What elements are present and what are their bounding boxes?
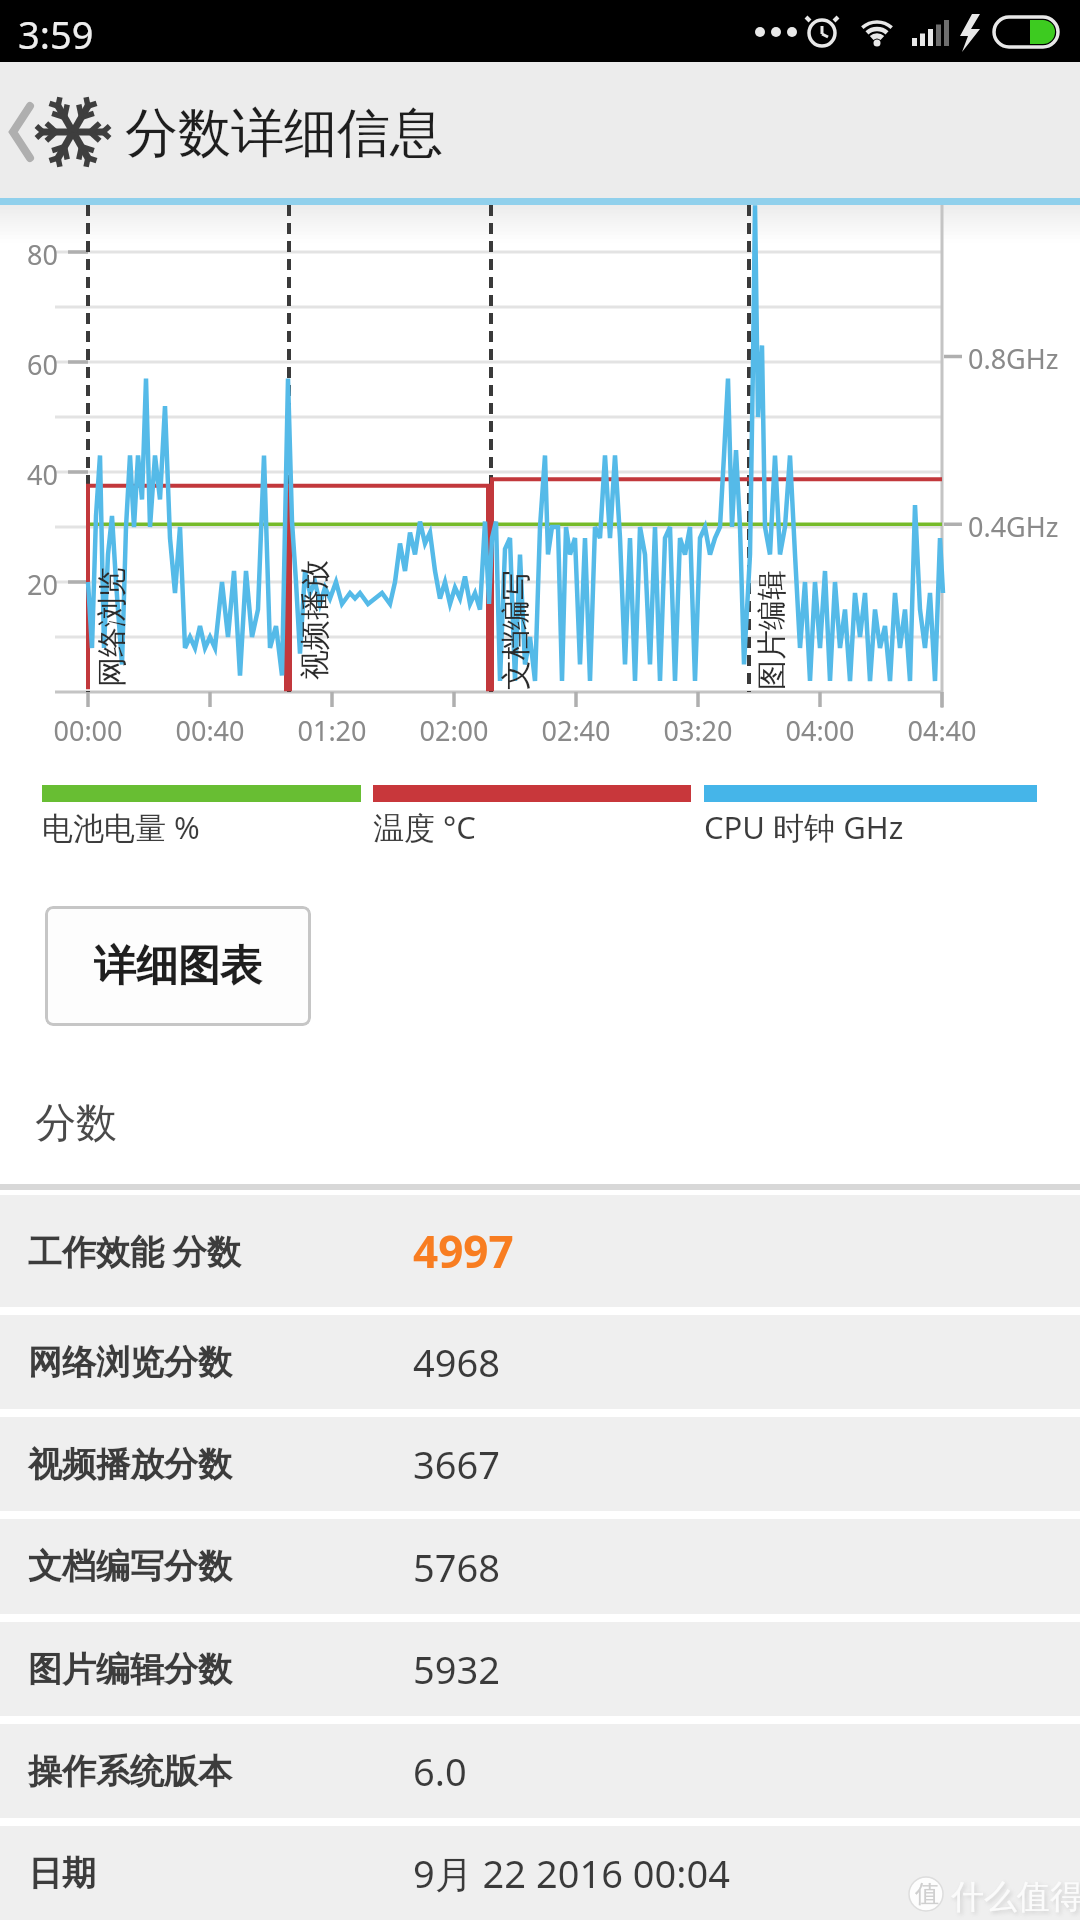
staticText: 5768 [413,1541,500,1593]
staticText: 分数详细信息 [125,100,443,167]
button[interactable]: 图片编辑分数 [0,1622,1080,1716]
staticText: 02:40 [516,712,636,749]
button[interactable]: 文档编写分数 [0,1519,1080,1614]
staticText: 视频播放分数 [28,1443,232,1486]
staticText: 4997 [413,1221,514,1281]
staticText: 操作系统版本 [28,1750,232,1793]
staticText: 01:20 [272,712,392,749]
staticText: 日期 [28,1852,96,1895]
staticText: 5932 [413,1643,500,1695]
staticText: 40 [20,456,58,493]
button[interactable]: 工作效能 分数 [0,1195,1080,1307]
staticText: 02:00 [394,712,514,749]
staticText: 0.4GHz [968,508,1059,545]
staticText: 3667 [413,1438,500,1490]
button[interactable]: 详细图表 [45,906,311,1026]
button[interactable]: 日期 [0,1826,1080,1920]
staticText: 详细图表 [94,940,262,993]
staticText: 4968 [413,1336,500,1388]
staticText: CPU 时钟 GHz [704,806,904,848]
staticText: 工作效能 分数 [28,1228,241,1274]
staticText: 图片编辑 [753,570,791,690]
staticText: 04:40 [882,712,1002,749]
staticText: 网络浏览 [93,567,131,687]
button[interactable]: 网络浏览分数 [0,1315,1080,1409]
staticText: 60 [20,346,58,383]
staticText: 图片编辑分数 [28,1648,232,1691]
staticText: 03:20 [638,712,758,749]
staticText: 04:00 [760,712,880,749]
staticText: 3:59 [18,8,94,60]
staticText: 9月 22 2016 00:04 [413,1847,730,1899]
button[interactable] [0,92,60,172]
staticText: 网络浏览分数 [28,1341,232,1384]
staticText: 视频播放 [296,560,334,680]
button[interactable]: 视频播放分数 [0,1417,1080,1511]
staticText: 20 [20,566,58,603]
staticText: 6.0 [413,1745,467,1797]
staticText: 00:00 [28,712,148,749]
staticText: 80 [20,236,58,273]
staticText: 00:40 [150,712,270,749]
staticText: 分数 [35,1098,117,1150]
staticText: 电池电量 % [42,806,200,848]
staticText: 值 [915,1879,939,1909]
staticText: 0.8GHz [968,340,1059,377]
staticText: 文档编写 [497,570,535,690]
staticText: 文档编写分数 [28,1545,232,1588]
button[interactable]: 操作系统版本 [0,1724,1080,1818]
staticText: 温度 °C [373,806,476,848]
staticText: 什么值得买 [951,1876,1080,1918]
